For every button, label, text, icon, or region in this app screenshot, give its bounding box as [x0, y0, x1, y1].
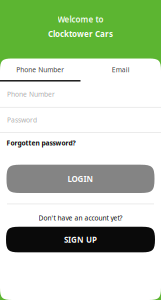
staticText: Password	[7, 115, 37, 124]
staticText: Don't have an account yet?	[38, 213, 122, 222]
staticText: Phone Number	[16, 65, 64, 74]
button[interactable]: Forgotten password?	[0, 133, 161, 153]
staticText: Welcome to	[57, 14, 103, 25]
button[interactable]: SIGN UP	[6, 227, 155, 252]
staticText: Forgotten password?	[6, 138, 75, 147]
staticText: Phone Number	[7, 90, 55, 99]
button[interactable]: Phone Number	[0, 58, 80, 81]
staticText: Clocktower Cars	[48, 29, 113, 39]
button[interactable]: LOGIN	[6, 165, 154, 193]
staticText: Email	[112, 65, 130, 74]
button[interactable]: Email	[80, 58, 161, 81]
staticText: SIGN UP	[64, 234, 97, 245]
staticText: LOGIN	[67, 173, 93, 184]
